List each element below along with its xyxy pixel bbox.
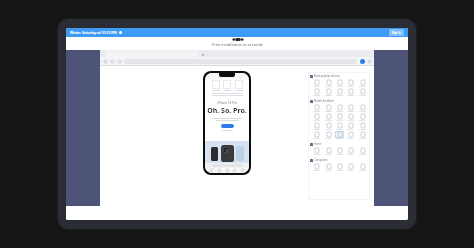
button[interactable]: [311, 113, 321, 121]
button[interactable]: Account: [392, 30, 401, 35]
button[interactable]: [323, 79, 333, 87]
button[interactable]: Tool 2: [226, 169, 229, 172]
staticText: Home: [314, 142, 322, 146]
button[interactable]: [311, 79, 321, 87]
button[interactable]: Back: [103, 59, 107, 63]
button[interactable]: [334, 113, 344, 121]
button[interactable]: [323, 163, 333, 171]
button[interactable]: Winter Saturday at 10:15 PM: [66, 28, 408, 37]
button[interactable]: [345, 88, 355, 96]
button[interactable]: New tab: [201, 53, 205, 57]
button[interactable]: [357, 131, 367, 139]
staticText: Most popular devices: [314, 74, 340, 78]
button[interactable]: [334, 122, 344, 130]
button[interactable]: [212, 80, 220, 89]
button[interactable]: Profile: [360, 59, 365, 64]
button[interactable]: Tool 3: [233, 169, 236, 172]
button[interactable]: [357, 88, 367, 96]
button[interactable]: [345, 131, 355, 139]
button[interactable]: [311, 122, 321, 130]
button[interactable]: [323, 131, 333, 139]
button[interactable]: [334, 88, 344, 96]
button[interactable]: [323, 88, 333, 96]
button[interactable]: [345, 79, 355, 87]
button[interactable]: [311, 163, 321, 171]
button[interactable]: [323, 122, 333, 130]
button[interactable]: [357, 163, 367, 171]
button[interactable]: [323, 147, 333, 155]
button[interactable]: [345, 163, 355, 171]
button[interactable]: Forward: [110, 59, 114, 63]
button[interactable]: [357, 147, 367, 155]
button[interactable]: [334, 163, 344, 171]
button[interactable]: [345, 147, 355, 155]
button[interactable]: Buy: [221, 124, 234, 128]
button[interactable]: [323, 104, 333, 112]
button[interactable]: [345, 104, 355, 112]
staticText: iPhone 14 Pro: [205, 101, 249, 105]
staticText: Get it: [392, 30, 401, 35]
button[interactable]: Menu: [367, 59, 371, 63]
button[interactable]: Tool 0: [210, 169, 213, 172]
button[interactable]: [334, 104, 344, 112]
button[interactable]: Tool 4: [241, 169, 244, 172]
button[interactable]: [311, 88, 321, 96]
button[interactable]: [311, 104, 321, 112]
button[interactable]: [345, 122, 355, 130]
staticText: Computers: [314, 158, 328, 162]
button[interactable]: [223, 80, 231, 89]
staticText: Mobile & tablets: [314, 99, 334, 103]
button[interactable]: [311, 131, 321, 139]
button[interactable]: [357, 79, 367, 87]
staticText: Free installation in seconds: [212, 42, 263, 47]
staticText: Oh. So. Pro.: [205, 106, 249, 116]
button[interactable]: Tool 1: [218, 169, 221, 172]
button[interactable]: [311, 147, 321, 155]
button[interactable]: [334, 147, 344, 155]
button[interactable]: [357, 104, 367, 112]
button[interactable]: [334, 131, 344, 139]
button[interactable]: [345, 113, 355, 121]
button[interactable]: [323, 113, 333, 121]
button[interactable]: [334, 79, 344, 87]
button[interactable]: [357, 113, 367, 121]
button[interactable]: [357, 122, 367, 130]
staticText: Winter Saturday at 10:15 PM: [70, 30, 117, 35]
button[interactable]: [235, 80, 243, 89]
button[interactable]: Reload: [117, 59, 121, 63]
